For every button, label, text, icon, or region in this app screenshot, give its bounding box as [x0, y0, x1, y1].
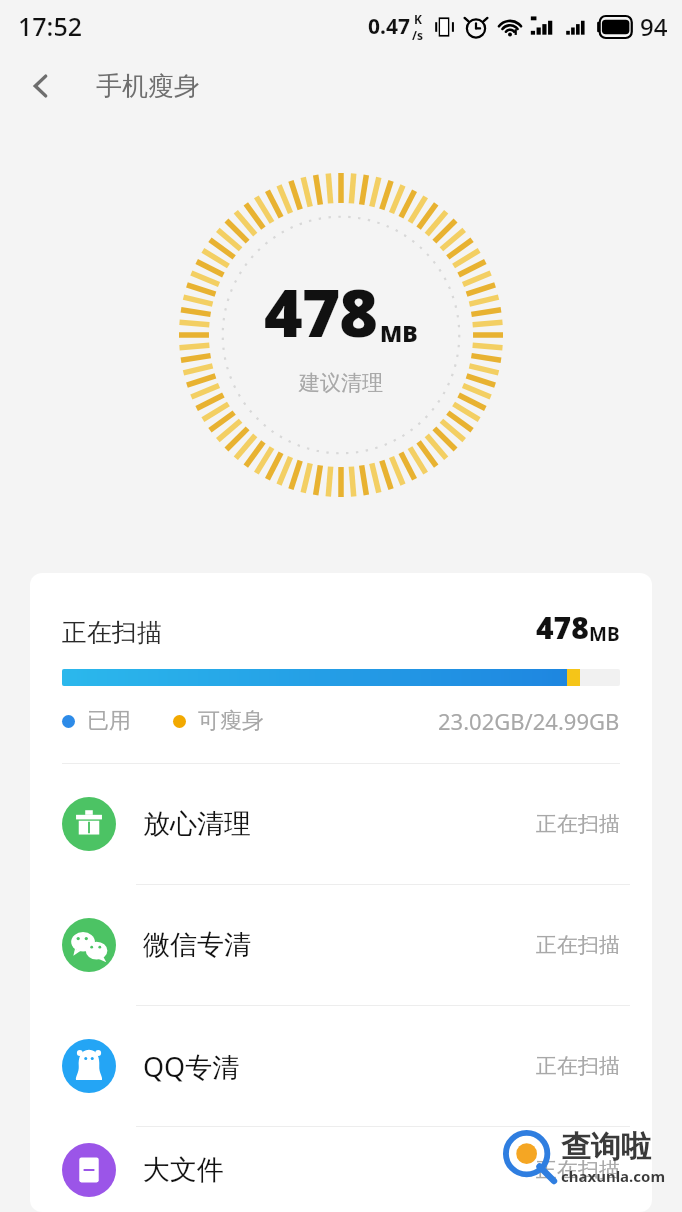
button[interactable]: 放心清理: [30, 764, 652, 884]
staticText: 大文件: [143, 1153, 224, 1187]
staticText: 0.47: [368, 12, 410, 41]
staticText: QQ专清: [143, 1048, 240, 1085]
staticText: 已用: [87, 707, 131, 735]
staticText: 可瘦身: [198, 707, 264, 735]
staticText: /s: [412, 27, 424, 43]
button[interactable]: 微信专清: [30, 885, 652, 1005]
staticText: 478: [536, 607, 589, 648]
button[interactable]: 大文件: [30, 1127, 652, 1212]
staticText: 正在扫描: [62, 617, 162, 648]
staticText: 建议清理: [299, 370, 383, 396]
staticText: 17:52: [18, 9, 83, 43]
button[interactable]: QQ专清: [30, 1006, 652, 1126]
staticText: MB: [380, 317, 418, 348]
staticText: 手机瘦身: [96, 70, 200, 103]
staticText: 放心清理: [143, 807, 251, 841]
staticText: 94: [640, 10, 668, 43]
staticText: 正在扫描: [536, 1053, 620, 1079]
staticText: 正在扫描: [536, 1157, 620, 1183]
staticText: 23.02GB/24.99GB: [438, 706, 620, 736]
staticText: 查询啦: [561, 1128, 651, 1166]
staticText: 微信专清: [143, 928, 251, 962]
staticText: K: [414, 11, 422, 27]
staticText: 正在扫描: [536, 811, 620, 837]
staticText: 478: [264, 266, 378, 356]
button[interactable]: Back: [14, 59, 68, 113]
staticText: chaxunla.com: [561, 1166, 666, 1186]
staticText: 正在扫描: [536, 932, 620, 958]
staticText: MB: [589, 621, 620, 647]
